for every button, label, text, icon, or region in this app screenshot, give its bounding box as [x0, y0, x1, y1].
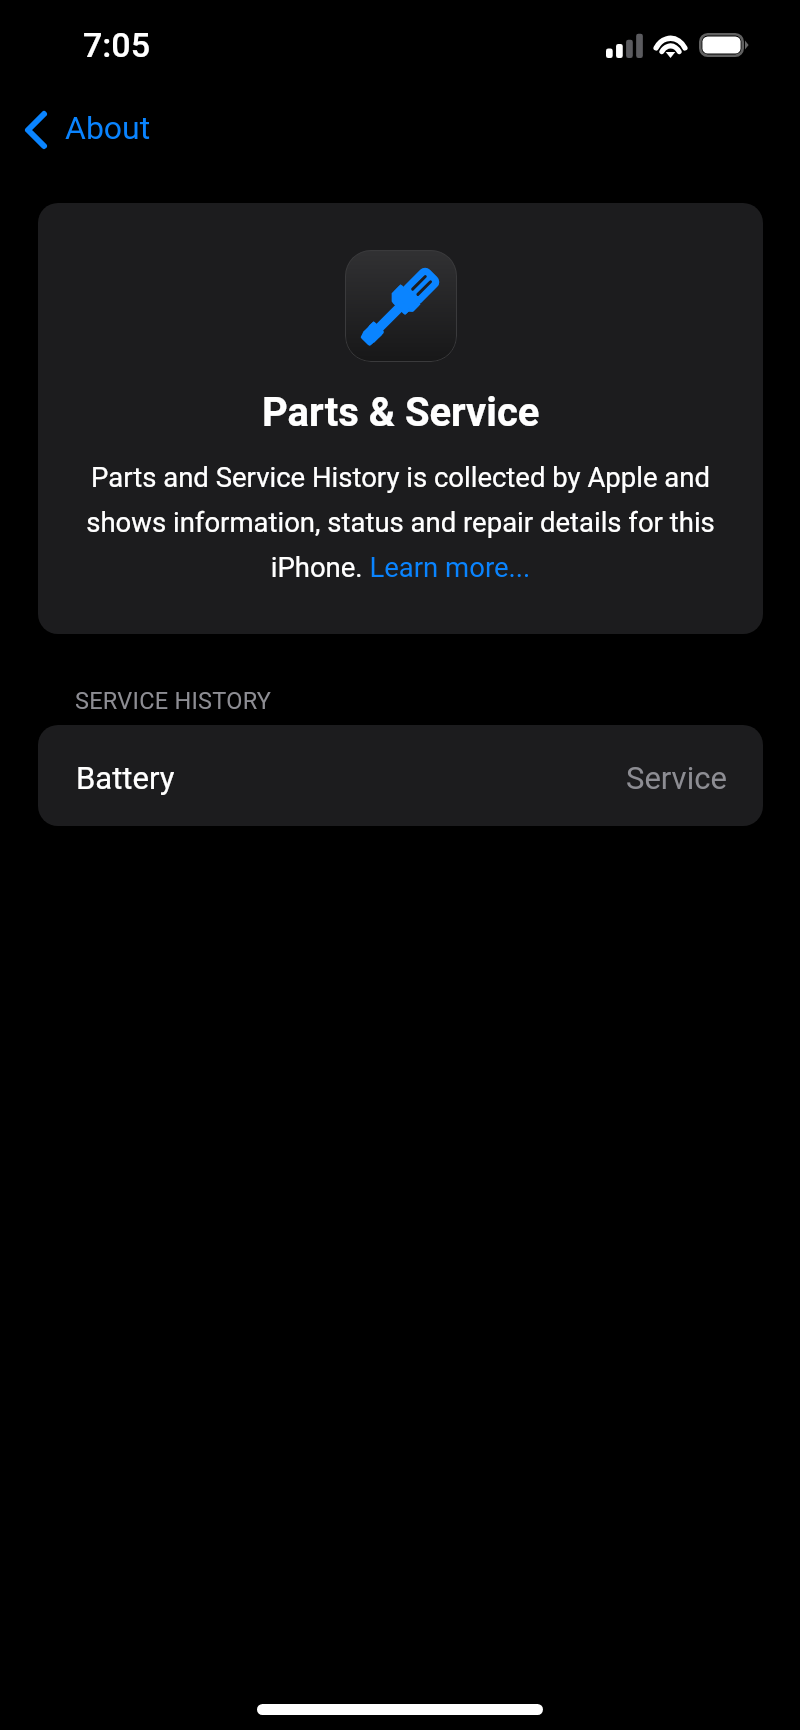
button[interactable]: Back	[15, 105, 165, 159]
other: Back	[25, 111, 47, 149]
staticText: Parts and Service History is collected b…	[38, 461, 763, 583]
staticText: Service	[626, 760, 727, 796]
staticText: Parts & Service	[262, 389, 540, 436]
staticText: Battery	[76, 760, 175, 796]
button[interactable]: Battery	[38, 725, 763, 826]
staticText: About	[65, 109, 151, 147]
staticText: SERVICE HISTORY	[75, 687, 272, 715]
staticText: 7:05	[83, 25, 150, 65]
